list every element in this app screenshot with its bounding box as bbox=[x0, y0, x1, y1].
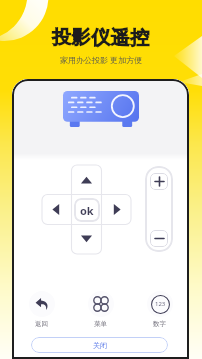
staticText: 家用办公投影 更加方便 bbox=[0, 54, 202, 65]
staticText: 123 bbox=[155, 300, 166, 308]
button[interactable]: 返回 bbox=[12, 291, 71, 328]
staticText: 返回 bbox=[35, 320, 48, 328]
staticText: ok bbox=[80, 203, 94, 218]
button[interactable]: 关闭 bbox=[31, 337, 168, 353]
button[interactable]: 菜单 bbox=[71, 291, 130, 328]
button[interactable]: Volume up bbox=[150, 173, 168, 190]
button[interactable]: Volume down bbox=[150, 230, 168, 247]
staticText: 投影仪遥控 bbox=[0, 26, 202, 50]
button[interactable]: ok bbox=[74, 198, 100, 222]
staticText: 菜单 bbox=[94, 320, 107, 328]
button[interactable]: 123 bbox=[130, 291, 189, 328]
staticText: 关闭 bbox=[93, 341, 107, 350]
staticText: 数字 bbox=[153, 320, 166, 328]
